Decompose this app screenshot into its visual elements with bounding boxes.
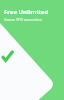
staticText: Free Unlimited <box>4 8 49 16</box>
staticText: Secure VPN connection <box>4 17 43 22</box>
